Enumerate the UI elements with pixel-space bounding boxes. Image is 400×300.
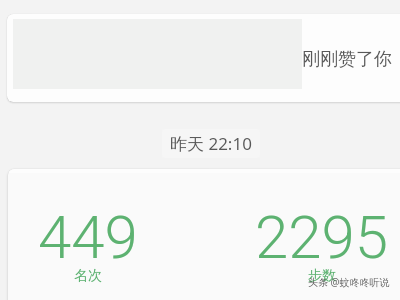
button[interactable]: 449: [8, 169, 400, 300]
button[interactable]: 刚刚赞了你: [7, 14, 400, 102]
staticText: 名次: [74, 267, 102, 285]
staticText: 刚刚赞了你: [302, 48, 392, 71]
staticText: 步数: [308, 267, 336, 285]
staticText: 昨天 22:10: [170, 132, 252, 155]
staticText: 2295: [255, 202, 389, 272]
staticText: 头条 @蚊咚咚听说: [308, 275, 390, 289]
button[interactable]: 449: [38, 202, 138, 290]
staticText: 449: [38, 202, 138, 272]
button[interactable]: 2295: [255, 202, 389, 290]
